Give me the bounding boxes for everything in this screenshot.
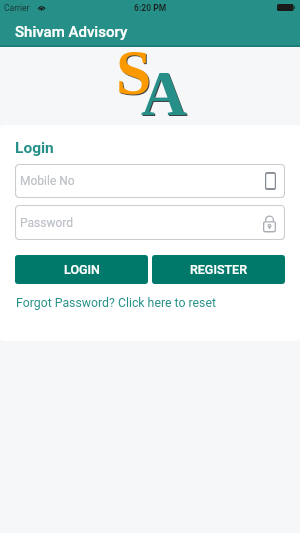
button[interactable]: Forgot Password? Click here to reset <box>16 296 216 310</box>
button[interactable]: REGISTER <box>152 255 285 284</box>
staticText: Shivam Advisory <box>15 23 128 41</box>
button[interactable]: Password <box>15 205 285 240</box>
staticText: A <box>142 59 188 129</box>
staticText: Mobile No <box>20 174 75 188</box>
staticText: Password <box>20 216 74 230</box>
staticText: A <box>141 58 187 128</box>
staticText: Carrier <box>4 3 30 13</box>
staticText: S <box>116 37 152 107</box>
button[interactable]: Mobile No <box>15 164 285 198</box>
staticText: REGISTER <box>190 262 247 277</box>
staticText: S <box>117 38 153 108</box>
staticText: 6:20 PM <box>134 3 167 13</box>
staticText: LOGIN <box>64 262 100 277</box>
button[interactable]: LOGIN <box>15 255 148 284</box>
staticText: Forgot Password? Click here to reset <box>16 296 216 310</box>
staticText: Login <box>15 139 54 157</box>
